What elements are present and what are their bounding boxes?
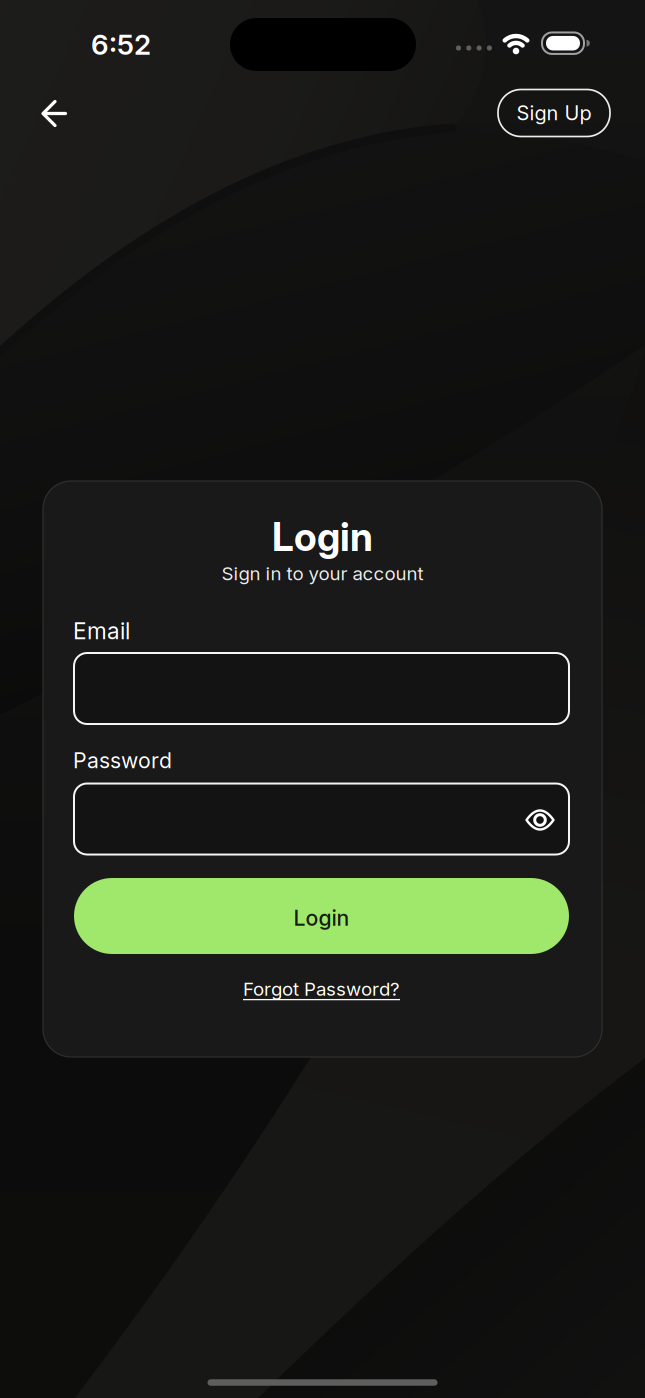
staticText: Email	[73, 618, 130, 644]
staticText: Password	[73, 748, 172, 773]
staticText: Sign in to your account	[221, 562, 423, 584]
staticText: Sign Up	[516, 101, 591, 125]
staticText: Forgot Password?	[243, 978, 400, 1000]
staticText: Login	[272, 514, 373, 560]
staticText: 6:52	[91, 28, 151, 61]
staticText: Login	[293, 905, 349, 931]
